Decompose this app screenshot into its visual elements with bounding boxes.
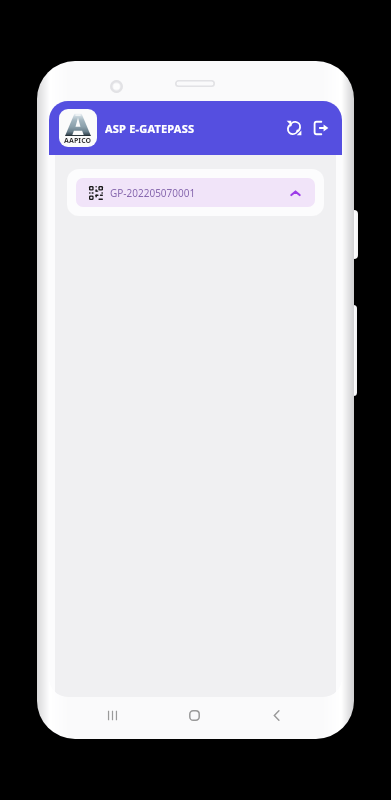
staticText: GP-202205070001 (110, 186, 196, 200)
button[interactable]: Logout (308, 115, 334, 141)
button[interactable]: Refresh (281, 115, 307, 141)
button[interactable]: Recent apps (101, 704, 123, 726)
button[interactable]: Home (183, 704, 205, 726)
staticText: AAPICO (64, 136, 92, 146)
button[interactable]: GP-202205070001 (76, 178, 315, 207)
button[interactable]: Back (265, 704, 287, 726)
staticText: ASP E-GATEPASS (105, 121, 195, 136)
